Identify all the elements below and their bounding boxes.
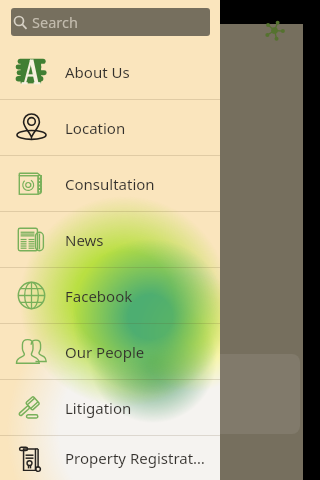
staticText: Litigation xyxy=(65,398,132,418)
button[interactable]: Litigation xyxy=(0,380,220,435)
staticText: Our People xyxy=(65,342,145,362)
button[interactable]: About Us xyxy=(0,44,220,99)
button[interactable]: Consultation xyxy=(0,156,220,211)
staticText: Location xyxy=(65,118,126,138)
button[interactable]: Property Registrat… xyxy=(0,436,220,480)
button[interactable]: Location xyxy=(0,100,220,155)
staticText: About Us xyxy=(65,62,130,82)
button[interactable]: Search xyxy=(11,8,210,36)
staticText: Search xyxy=(32,12,78,32)
staticText: Property Registrat… xyxy=(65,448,205,468)
staticText: Consultation xyxy=(65,174,155,194)
staticText: News xyxy=(65,230,104,250)
button[interactable]: Our People xyxy=(0,324,220,379)
staticText: Facebook xyxy=(65,286,133,306)
button[interactable]: Facebook xyxy=(0,268,220,323)
button[interactable]: News xyxy=(0,212,220,267)
